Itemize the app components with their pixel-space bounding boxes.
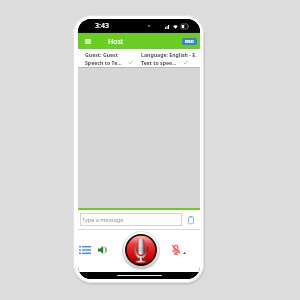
button[interactable]: Speaker [96,243,110,257]
button[interactable]: Language: English - E... [141,51,197,66]
staticText: Host [108,37,124,47]
button[interactable]: Menu [82,35,94,47]
staticText: Guest: Guest [85,51,118,58]
staticText: END [185,39,194,45]
staticText: Text to spee... [141,59,177,66]
staticText: 3:43 [95,21,109,31]
button[interactable]: Transcript list [78,243,92,257]
button[interactable]: Copy [185,214,197,226]
button[interactable]: Guest: Guest [85,51,141,66]
staticText: Language: English - E... [141,51,197,58]
button[interactable]: Type a message [80,213,182,226]
staticText: Type a message [82,216,124,223]
button[interactable]: END [182,38,197,45]
button[interactable]: Mute [169,243,183,257]
staticText: Speech to Te... [85,59,122,66]
button[interactable]: Record [122,231,160,269]
